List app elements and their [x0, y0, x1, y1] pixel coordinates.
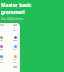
staticText: Master basic: [1, 2, 32, 9]
staticText: grammar!: [1, 9, 25, 16]
button[interactable]: [13, 55, 20, 64]
staticText: Fun daily lessons: [1, 17, 24, 21]
button[interactable]: [0, 36, 9, 45]
button[interactable]: [13, 36, 20, 45]
button[interactable]: [0, 45, 9, 54]
button[interactable]: [13, 45, 20, 54]
button[interactable]: [0, 55, 9, 64]
